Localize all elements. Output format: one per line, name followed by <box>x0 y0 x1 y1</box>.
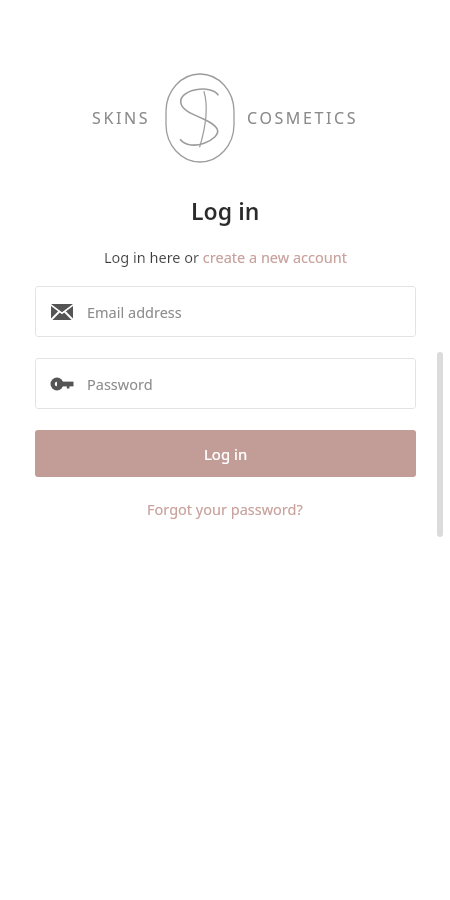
button[interactable]: Forgot your password? <box>141 496 309 522</box>
other: Email address <box>48 298 76 326</box>
button[interactable]: Log in here or create a new account <box>100 245 351 269</box>
staticText: Forgot your password? <box>147 499 303 519</box>
staticText: Log in here or create a new account <box>104 247 347 267</box>
staticText: Email address <box>87 302 182 322</box>
other: Password <box>48 370 76 398</box>
staticText: Password <box>87 374 153 394</box>
button[interactable]: Email address <box>35 286 416 337</box>
staticText: SKINS <box>92 107 151 129</box>
staticText: Log in <box>191 195 260 226</box>
button[interactable]: Log in <box>35 430 416 477</box>
staticText: Log in <box>204 444 248 464</box>
button[interactable]: Password <box>35 358 416 409</box>
staticText: COSMETICS <box>247 107 359 129</box>
